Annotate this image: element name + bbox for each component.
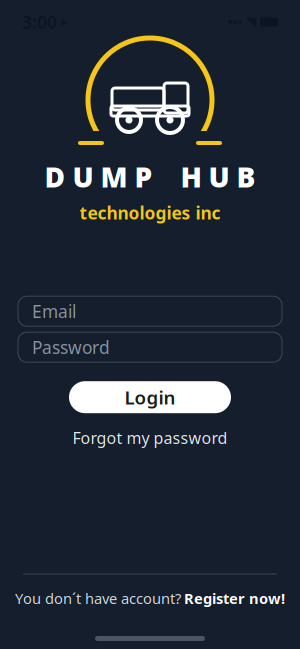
staticText: Register now! bbox=[184, 588, 285, 608]
button[interactable]: You don´t have account? bbox=[5, 582, 295, 614]
staticText: ➤ bbox=[59, 15, 69, 29]
staticText: technologies inc bbox=[79, 201, 220, 224]
staticText: You don´t have account? bbox=[15, 588, 181, 608]
staticText: ••• bbox=[228, 14, 243, 30]
button[interactable]: Password bbox=[18, 332, 282, 362]
button[interactable]: Login bbox=[69, 381, 231, 413]
staticText: D U M P H U B bbox=[44, 158, 255, 195]
staticText: 3:00 bbox=[22, 10, 57, 33]
staticText: Email bbox=[32, 300, 76, 323]
button[interactable]: Forgot my password bbox=[64, 422, 235, 453]
staticText: Forgot my password bbox=[72, 427, 227, 448]
staticText: Password bbox=[32, 336, 110, 359]
staticText: ◥ bbox=[246, 14, 256, 29]
staticText: Login bbox=[124, 385, 175, 410]
button[interactable]: Email bbox=[18, 296, 282, 326]
